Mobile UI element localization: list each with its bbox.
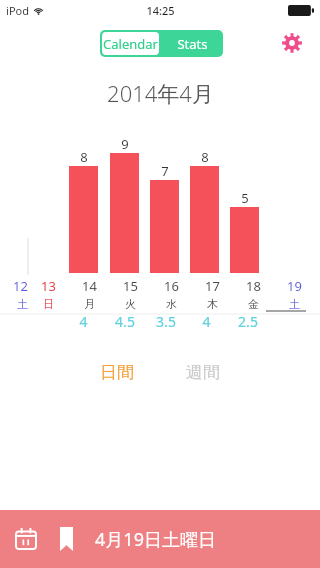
staticText: 14:25	[146, 3, 175, 18]
button[interactable]: 週間	[186, 362, 220, 383]
button[interactable]: 18	[233, 277, 274, 311]
staticText: 日	[43, 297, 54, 311]
button[interactable]: 19	[274, 277, 315, 311]
staticText: 土	[17, 297, 28, 311]
staticText: 8	[80, 148, 88, 166]
button[interactable]: Calendar	[0, 510, 320, 568]
staticText: 16	[164, 277, 179, 295]
button[interactable]: 17	[192, 277, 233, 311]
staticText: 8	[201, 148, 209, 166]
staticText: iPod	[6, 3, 29, 18]
staticText: 15	[123, 277, 138, 295]
button[interactable]: 12	[0, 277, 28, 311]
staticText: 週間	[186, 362, 220, 383]
button[interactable]: Stats	[161, 30, 223, 57]
staticText: 5	[241, 189, 249, 207]
button[interactable]: 16	[151, 277, 192, 311]
staticText: 水	[166, 297, 177, 311]
staticText: 2014年4月	[107, 78, 214, 108]
button[interactable]: Calendar	[13, 526, 39, 552]
staticText: 木	[207, 297, 218, 311]
staticText: 17	[205, 277, 220, 295]
staticText: 金	[248, 297, 259, 311]
button[interactable]: 日間	[100, 362, 134, 383]
staticText: 4	[79, 312, 88, 331]
button[interactable]: 13	[28, 277, 69, 311]
staticText: 19	[287, 277, 302, 295]
staticText: 7	[161, 162, 169, 180]
staticText: 月	[84, 297, 95, 311]
staticText: 12	[13, 277, 28, 295]
button[interactable]: 15	[110, 277, 151, 311]
staticText: Calendar	[103, 35, 158, 53]
staticText: 9	[121, 135, 129, 153]
staticText: Stats	[177, 35, 208, 53]
staticText: 13	[41, 277, 56, 295]
staticText: 火	[125, 297, 136, 311]
staticText: 日間	[100, 362, 134, 383]
button[interactable]: Bookmark	[53, 526, 79, 552]
staticText: 3.5	[156, 312, 176, 331]
staticText: 18	[246, 277, 261, 295]
button[interactable]: 14	[69, 277, 110, 311]
button[interactable]: Settings	[278, 29, 306, 57]
button[interactable]: Calendar	[102, 32, 159, 55]
staticText: 4	[202, 312, 211, 331]
staticText: 4月19日土曜日	[95, 527, 216, 552]
staticText: 14	[82, 277, 97, 295]
staticText: 土	[289, 297, 300, 311]
staticText: 2.5	[238, 312, 258, 331]
staticText: 4.5	[115, 312, 135, 331]
